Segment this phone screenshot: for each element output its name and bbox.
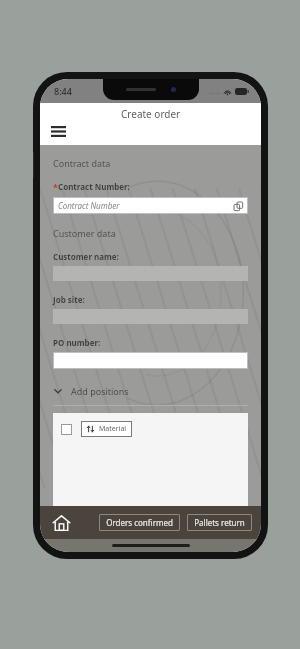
button[interactable]: Open navigation menu (46, 119, 70, 143)
button[interactable]: Home (49, 511, 73, 535)
staticText: Add positions (71, 385, 129, 397)
staticText: Job site: (53, 294, 85, 305)
staticText: Pallets return (194, 517, 245, 528)
staticText: Customer name: (53, 251, 119, 262)
staticText: Contract Number (58, 200, 120, 211)
staticText: Orders confirmed (106, 517, 173, 528)
button[interactable]: Contract Number (53, 197, 248, 214)
staticText: * (53, 181, 58, 193)
staticText: Material (99, 424, 127, 434)
button[interactable]: Material (86, 421, 127, 437)
button[interactable]: Select all positions (61, 424, 72, 435)
staticText: Contract data (53, 157, 111, 169)
staticText: Contract Number: (58, 181, 130, 192)
staticText: Create order (121, 107, 181, 121)
staticText: 8:44 (54, 85, 72, 97)
staticText: PO number: (53, 337, 101, 348)
button[interactable]: Orders confirmed (106, 514, 173, 531)
button[interactable]: Pallets return (194, 514, 245, 531)
button[interactable] (53, 352, 248, 369)
button[interactable]: Add positions (53, 383, 248, 399)
staticText: Customer data (53, 227, 116, 239)
button[interactable]: Copy contract number (232, 200, 244, 212)
